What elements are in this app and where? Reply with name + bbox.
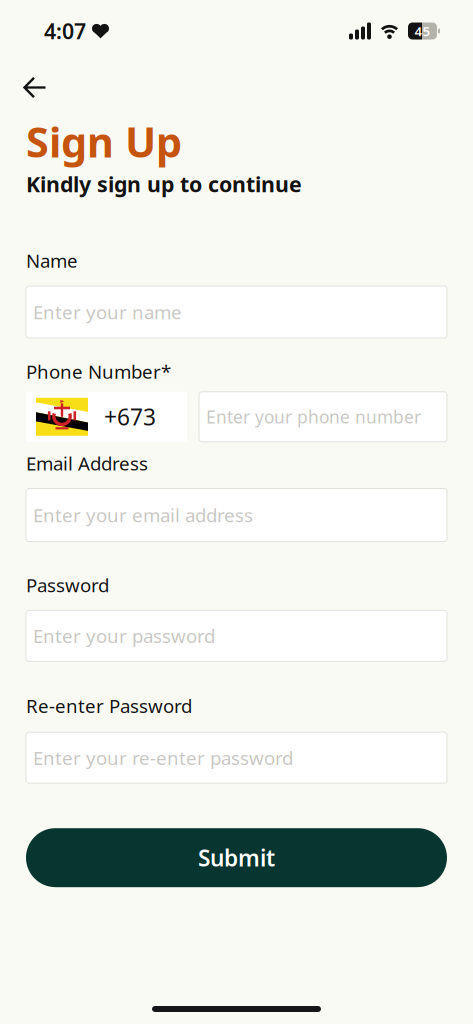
button[interactable]: Enter your name <box>26 286 447 338</box>
staticText: Enter your password <box>33 623 215 648</box>
staticText: Enter your email address <box>33 503 253 527</box>
staticText: Name <box>26 248 78 273</box>
staticText: Enter your name <box>33 300 182 324</box>
button[interactable]: Enter your phone number <box>199 392 447 442</box>
staticText: Re-enter Password <box>26 693 192 718</box>
staticText: Phone Number* <box>26 359 171 384</box>
button[interactable]: Enter your password <box>26 610 447 661</box>
staticText: Submit <box>198 843 275 873</box>
staticText: Enter your phone number <box>206 405 421 428</box>
staticText: 45 <box>414 22 430 40</box>
button[interactable]: +673 <box>26 392 187 442</box>
button[interactable] <box>26 76 50 99</box>
staticText: +673 <box>104 402 156 432</box>
staticText: Enter your re-enter password <box>33 745 293 770</box>
button[interactable]: Submit <box>26 828 447 887</box>
button[interactable]: Enter your re-enter password <box>26 732 447 783</box>
staticText: Kindly sign up to continue <box>26 170 302 198</box>
button[interactable]: Enter your email address <box>26 489 447 542</box>
staticText: Sign Up <box>26 114 182 169</box>
staticText: Email Address <box>26 451 148 476</box>
staticText: Password <box>26 573 109 597</box>
staticText: 4:07 <box>44 17 86 45</box>
